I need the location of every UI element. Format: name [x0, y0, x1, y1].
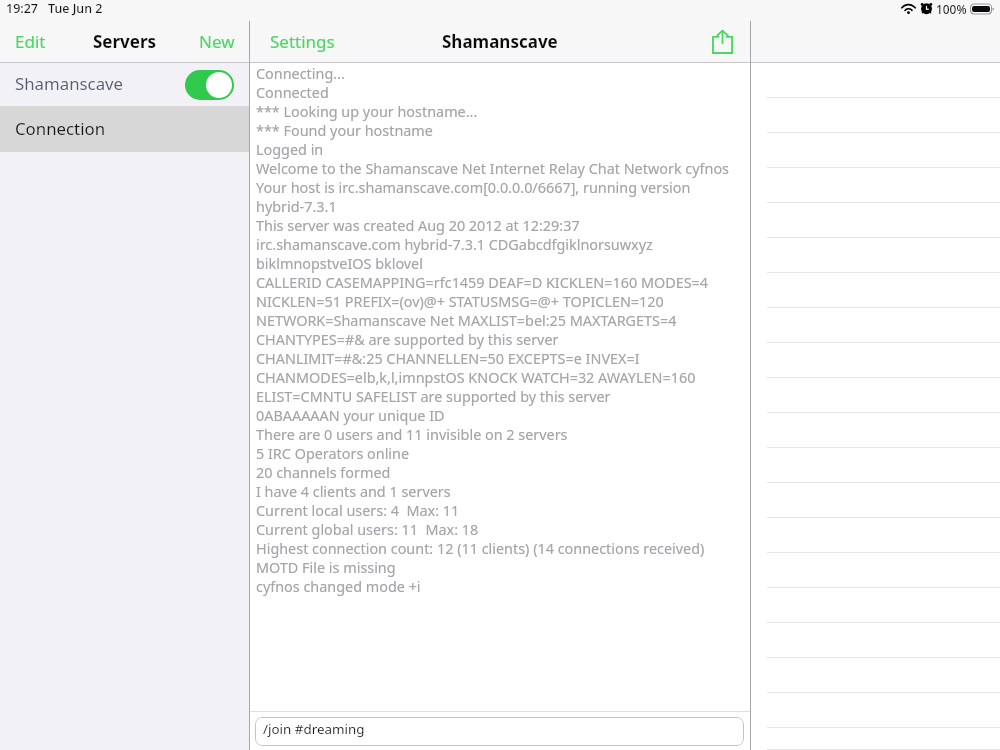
staticText: Connecting... — [256, 64, 345, 83]
staticText: *** Looking up your hostname... — [256, 102, 478, 121]
button[interactable] — [751, 343, 1000, 378]
button[interactable]: New — [184, 22, 249, 61]
button[interactable] — [751, 448, 1000, 483]
staticText: Edit — [15, 30, 46, 53]
staticText: There are 0 users and 11 invisible on 2 … — [256, 425, 568, 444]
staticText: ELIST=CMNTU SAFELIST are supported by th… — [256, 387, 611, 406]
staticText: irc.shamanscave.com hybrid-7.3.1 CDGabcd… — [256, 235, 653, 254]
button[interactable] — [751, 658, 1000, 693]
staticText: Settings — [270, 30, 335, 53]
button[interactable]: Settings — [250, 22, 350, 61]
staticText: Your host is irc.shamanscave.com[0.0.0.0… — [256, 178, 691, 197]
staticText: I have 4 clients and 1 servers — [256, 482, 451, 501]
staticText: This server was created Aug 20 2012 at 1… — [256, 216, 580, 235]
button[interactable] — [751, 518, 1000, 553]
button[interactable] — [751, 238, 1000, 273]
button[interactable]: Connection — [0, 106, 249, 152]
staticText: Connected — [256, 83, 329, 102]
staticText: Current global users: 11 Max: 18 — [256, 520, 479, 539]
button[interactable] — [751, 133, 1000, 168]
staticText: *** Found your hostname — [256, 121, 433, 140]
staticText: CALLERID CASEMAPPING=rfc1459 DEAF=D KICK… — [256, 273, 709, 292]
staticText: CHANLIMIT=#&:25 CHANNELLEN=50 EXCEPTS=e … — [256, 349, 640, 368]
staticText: 19:27 — [6, 0, 39, 17]
staticText: Connection — [15, 117, 106, 140]
button[interactable] — [751, 63, 1000, 98]
staticText: NETWORK=Shamanscave Net MAXLIST=bel:25 M… — [256, 311, 677, 330]
staticText: Servers — [93, 30, 157, 53]
staticText: cyfnos changed mode +i — [256, 577, 421, 596]
staticText: biklmnopstveIOS bklovel — [256, 254, 423, 273]
staticText: Current local users: 4 Max: 11 — [256, 501, 460, 520]
button[interactable]: Toggle server — [185, 70, 234, 100]
button[interactable]: Shamanscave — [0, 63, 249, 106]
staticText: NICKLEN=51 PREFIX=(ov)@+ STATUSMSG=@+ TO… — [256, 292, 664, 311]
button[interactable] — [751, 413, 1000, 448]
staticText: New — [199, 30, 235, 53]
button[interactable] — [751, 553, 1000, 588]
button[interactable]: Share — [698, 22, 750, 61]
staticText: CHANTYPES=#& are supported by this serve… — [256, 330, 559, 349]
button[interactable] — [751, 308, 1000, 343]
staticText: /join #dreaming — [263, 720, 365, 738]
staticText: Highest connection count: 12 (11 clients… — [256, 539, 705, 558]
staticText: 20 channels formed — [256, 463, 391, 482]
button[interactable] — [751, 203, 1000, 238]
button[interactable]: Edit — [0, 22, 61, 61]
button[interactable] — [751, 168, 1000, 203]
staticText: 100% — [936, 1, 967, 17]
staticText: 5 IRC Operators online — [256, 444, 410, 463]
button[interactable] — [751, 588, 1000, 623]
staticText: Welcome to the Shamanscave Net Internet … — [256, 159, 729, 178]
staticText: CHANMODES=elb,k,l,imnpstOS KNOCK WATCH=3… — [256, 368, 696, 387]
button[interactable] — [751, 693, 1000, 728]
button[interactable] — [751, 483, 1000, 518]
button[interactable] — [751, 623, 1000, 658]
staticText: Shamanscave — [15, 72, 124, 95]
staticText: Logged in — [256, 140, 324, 159]
button[interactable] — [751, 98, 1000, 133]
staticText: Tue Jun 2 — [48, 0, 103, 17]
button[interactable] — [751, 728, 1000, 750]
staticText: Shamanscave — [442, 30, 558, 53]
staticText: MOTD File is missing — [256, 558, 396, 577]
button[interactable] — [751, 273, 1000, 308]
button[interactable]: /join #dreaming — [255, 717, 744, 746]
staticText: 0ABAAAAAN your unique ID — [256, 406, 445, 425]
button[interactable] — [751, 378, 1000, 413]
staticText: hybrid-7.3.1 — [256, 197, 337, 216]
